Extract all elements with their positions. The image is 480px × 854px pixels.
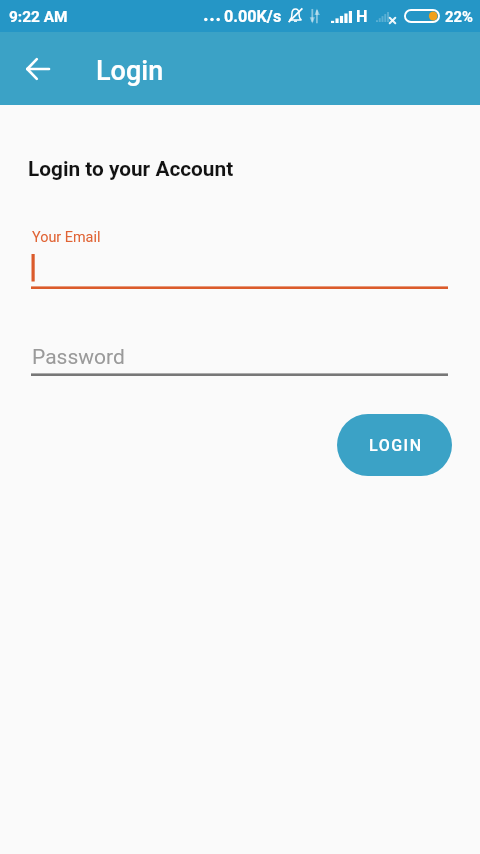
staticText: Password (32, 345, 125, 370)
button[interactable]: LOGIN (337, 414, 452, 476)
staticText: Your Email (32, 229, 101, 246)
button[interactable]: Your Email input field (31, 250, 448, 289)
button[interactable]: Password (31, 341, 448, 376)
staticText: 22% (445, 8, 473, 25)
staticText: 9:22 AM (9, 8, 68, 26)
staticText: Login (96, 55, 164, 87)
staticText: LOGIN (369, 436, 423, 455)
staticText: H (356, 7, 368, 26)
staticText: Login to your Account (28, 157, 234, 181)
button[interactable]: Back (14, 46, 60, 92)
staticText: 0.00K/s (224, 7, 282, 26)
